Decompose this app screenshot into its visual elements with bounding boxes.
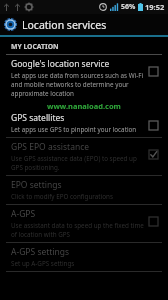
staticText: MY LOCATION [11,42,59,51]
staticText: A-GPS settings [11,246,70,258]
button[interactable]: A-GPS checkbox [149,217,158,226]
staticText: GPS EPO assistance [11,141,90,153]
staticText: Use assistant data to speed up the fixed… [11,221,145,239]
staticText: A-GPS [11,208,36,220]
staticText: Set up A-GPS settings [11,259,75,268]
other: Settings [4,18,17,31]
staticText: 19:52 [145,2,165,12]
staticText: Click to modify EPO configurations [11,192,113,201]
staticText: 56% [121,2,136,12]
button[interactable]: A-GPS settings [0,243,168,271]
button[interactable]: Settings [0,14,168,35]
button[interactable]: GPS EPO assistance [0,138,168,175]
staticText: EPO settings [11,179,62,191]
button[interactable]: GPS satellites [0,112,168,137]
button[interactable]: Google's location service [0,55,168,101]
button[interactable]: GPS EPO assistance checkbox [149,150,158,159]
staticText: Use GPS assistance data (EPO) to speed u… [11,154,145,172]
staticText: Google's location service [11,58,110,70]
button[interactable]: EPO settings [0,176,168,204]
staticText: www.nanaload.com [47,101,121,111]
staticText: Location services [22,18,107,32]
staticText: Let apps use GPS to pinpoint your locati… [11,125,137,134]
staticText: Let apps use data from sources such as W… [11,71,145,98]
button[interactable]: Google's location service checkbox [149,67,158,76]
button[interactable]: GPS satellites checkbox [149,121,158,130]
staticText: GPS satellites [11,112,65,124]
button[interactable]: A-GPS [0,205,168,242]
